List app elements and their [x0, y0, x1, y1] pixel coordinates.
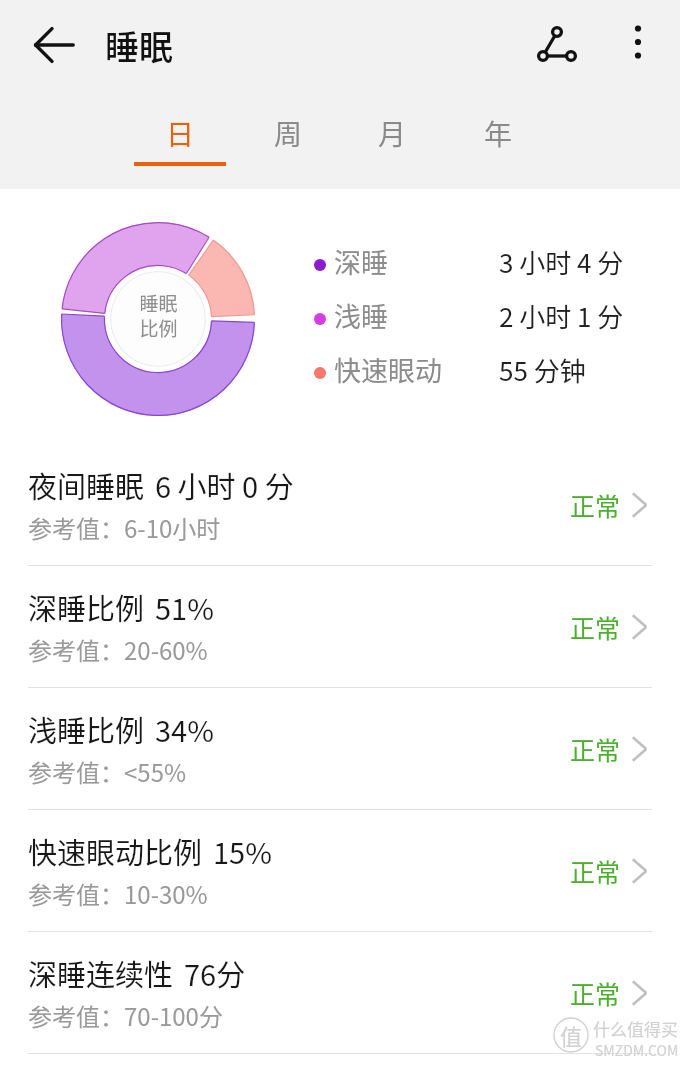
staticText: 20-60% — [124, 632, 208, 667]
staticText: 夜间睡眠 — [28, 464, 145, 506]
staticText: 参考值： — [28, 754, 124, 789]
button[interactable]: 日 — [134, 103, 226, 173]
staticText: 51% — [155, 586, 214, 628]
staticText: 正常 — [570, 853, 621, 889]
staticText: 6-10小时 — [124, 510, 221, 545]
button[interactable]: Share — [517, 11, 583, 77]
staticText: 2 小时 1 分 — [499, 297, 624, 335]
staticText: 深睡连续性 — [28, 952, 174, 994]
staticText: SMZDM.COM — [595, 1040, 679, 1060]
button[interactable]: 夜间睡眠 — [0, 444, 680, 565]
staticText: 浅睡 — [334, 296, 388, 335]
staticText: 参考值： — [28, 510, 124, 545]
staticText: 参考值： — [28, 998, 124, 1033]
staticText: 浅睡比例 — [28, 708, 145, 750]
staticText: 76分 — [184, 952, 246, 994]
staticText: 深睡 — [334, 242, 388, 281]
staticText: <55% — [124, 754, 187, 789]
staticText: 周 — [274, 113, 303, 154]
staticText: 70-100分 — [124, 998, 223, 1033]
staticText: 55 分钟 — [499, 351, 586, 389]
button[interactable]: 深睡连续性 — [0, 932, 680, 1053]
button[interactable]: 快速眼动比例 — [0, 810, 680, 931]
staticText: 年 — [484, 113, 513, 154]
button[interactable]: More options — [608, 12, 668, 72]
staticText: 正常 — [570, 731, 621, 767]
button[interactable]: 深睡比例 — [0, 566, 680, 687]
staticText: 6 小时 0 分 — [155, 464, 294, 506]
staticText: 正常 — [570, 609, 621, 645]
button[interactable]: Back — [21, 12, 87, 78]
staticText: 什么值得买 — [593, 1016, 678, 1041]
staticText: 快速眼动比例 — [28, 830, 203, 872]
staticText: 快速眼动 — [334, 350, 442, 389]
staticText: 参考值： — [28, 876, 124, 911]
staticText: 正常 — [570, 487, 621, 523]
staticText: 10-30% — [124, 876, 208, 911]
staticText: 34% — [155, 708, 214, 750]
staticText: 15% — [213, 830, 272, 872]
button[interactable]: 周 — [242, 103, 334, 173]
staticText: 睡眠 比例 — [139, 289, 178, 341]
staticText: 睡眠 — [105, 21, 173, 70]
staticText: 正常 — [570, 975, 621, 1011]
staticText: 参考值： — [28, 632, 124, 667]
staticText: 3 小时 4 分 — [499, 243, 624, 281]
staticText: 值 — [560, 1019, 583, 1051]
button[interactable]: 浅睡比例 — [0, 688, 680, 809]
staticText: 月 — [378, 113, 407, 154]
staticText: 深睡比例 — [28, 586, 145, 628]
button[interactable]: 年 — [452, 103, 544, 173]
staticText: 日 — [166, 113, 195, 154]
button[interactable]: 月 — [346, 103, 438, 173]
